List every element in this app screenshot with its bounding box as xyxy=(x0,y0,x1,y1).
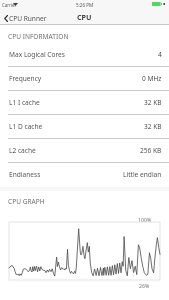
other: Battery xyxy=(152,2,165,6)
staticText: Max Logical Cores xyxy=(9,50,65,59)
staticText: CPU GRAPH xyxy=(8,197,45,206)
staticText: Endianess xyxy=(9,170,41,179)
staticText: 0 MHz xyxy=(142,74,162,83)
button[interactable]: Endianess xyxy=(0,163,169,187)
button[interactable]: CPU Runner xyxy=(0,12,51,25)
button[interactable]: Max Logical Cores xyxy=(0,43,169,67)
staticText: L1 I cache xyxy=(9,98,40,107)
staticText: CPU xyxy=(77,12,92,22)
other: Wi-Fi signal xyxy=(13,3,18,6)
button[interactable]: L2 cache xyxy=(0,139,169,163)
staticText: 26% xyxy=(139,282,150,289)
staticText: CPU INFORMATION xyxy=(8,32,69,41)
staticText: 256 KB xyxy=(140,146,162,155)
staticText: CPU Runner xyxy=(9,14,47,23)
staticText: 4 xyxy=(158,50,162,59)
button[interactable]: Frequency xyxy=(0,67,169,91)
staticText: L2 cache xyxy=(9,146,36,155)
staticText: 5:26 PM xyxy=(76,2,94,8)
staticText: 32 KB xyxy=(144,98,162,107)
staticText: Carrier xyxy=(2,2,17,8)
button[interactable]: L1 D cache xyxy=(0,115,169,139)
staticText: L1 D cache xyxy=(9,122,43,131)
button[interactable]: L1 I cache xyxy=(0,91,169,115)
staticText: 100% xyxy=(138,216,152,222)
staticText: Little endian xyxy=(123,170,162,179)
staticText: Frequency xyxy=(9,74,42,83)
staticText: 32 KB xyxy=(144,122,162,131)
